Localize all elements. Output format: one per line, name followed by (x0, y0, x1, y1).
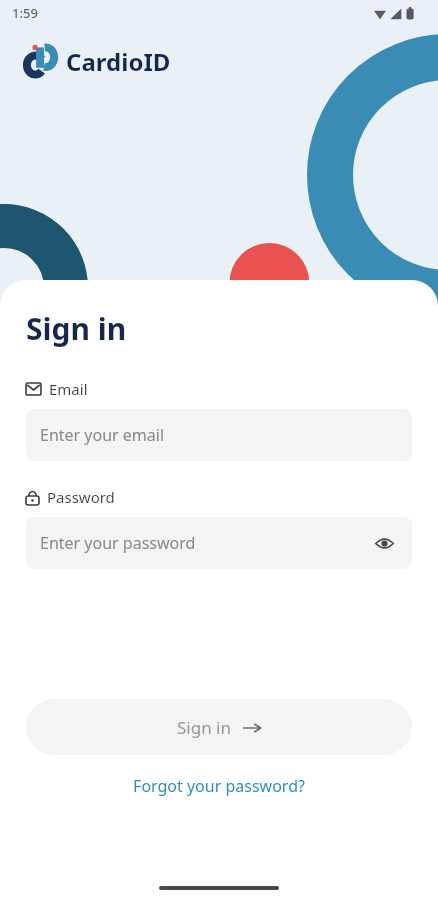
button[interactable]: Enter your password (26, 517, 412, 569)
staticText: CardioID (66, 45, 171, 78)
staticText: Password (47, 487, 115, 507)
staticText: Email (49, 379, 88, 399)
staticText: Sign in (177, 716, 231, 739)
button[interactable]: Forgot your password? (26, 769, 412, 803)
staticText: Enter your email (40, 424, 165, 446)
button[interactable]: Sign in (26, 699, 412, 755)
staticText: Enter your password (40, 532, 196, 554)
staticText: Sign in (26, 308, 127, 349)
button[interactable]: Enter your email (26, 409, 412, 461)
button[interactable]: Show password (370, 529, 398, 557)
staticText: 1:59 (12, 4, 38, 22)
staticText: Forgot your password? (133, 775, 305, 797)
